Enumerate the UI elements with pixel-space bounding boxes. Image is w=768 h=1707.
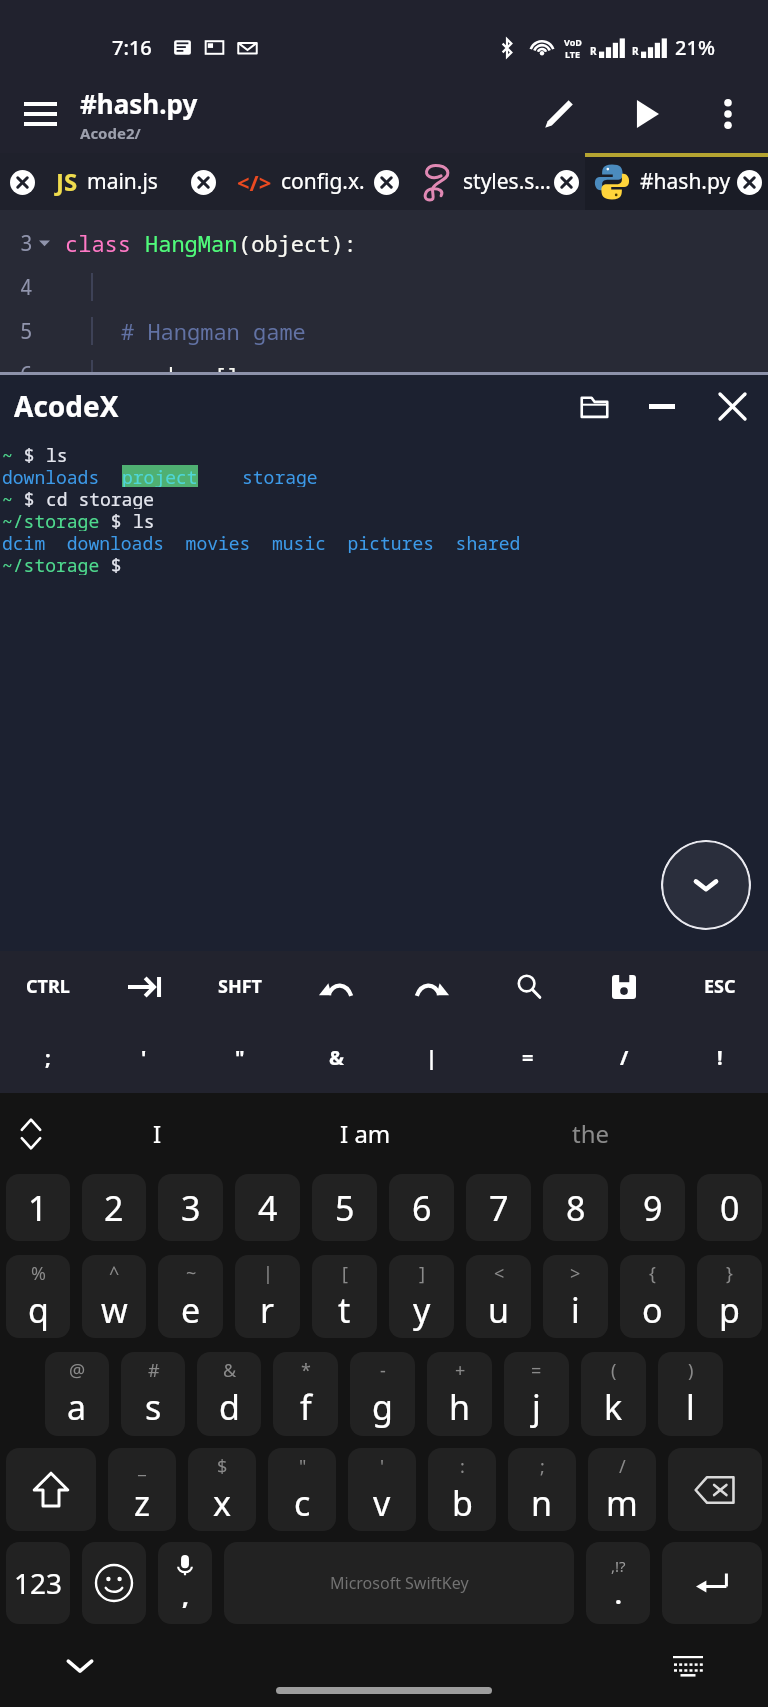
button[interactable]: #hash.py [585, 153, 768, 210]
button[interactable]: & [288, 1022, 384, 1093]
button[interactable]: 9 [620, 1174, 685, 1241]
button[interactable]: Edit [512, 75, 606, 153]
button[interactable]: " [268, 1448, 336, 1531]
button[interactable]: | [384, 1022, 480, 1093]
button[interactable]: the [478, 1093, 704, 1174]
button[interactable]: Close tab [736, 169, 762, 195]
button[interactable]: 4 [235, 1174, 300, 1241]
button[interactable]: Voice input [158, 1542, 212, 1624]
button[interactable]: ; [508, 1448, 576, 1531]
button[interactable]: Close tab [181, 153, 364, 210]
button[interactable]: SHFT [192, 951, 288, 1022]
button[interactable]: Redo [384, 951, 480, 1022]
button[interactable]: 6 [389, 1174, 454, 1241]
button[interactable]: Emoji [82, 1542, 146, 1624]
button[interactable]: Close terminal [697, 375, 768, 437]
staticText: ^ [109, 1261, 120, 1286]
button[interactable]: + [427, 1352, 492, 1436]
button[interactable]: } [697, 1255, 762, 1338]
button[interactable]: ] [389, 1255, 454, 1338]
button[interactable]: 0 [697, 1174, 762, 1241]
button[interactable]: I [62, 1093, 252, 1174]
button[interactable]: @ [45, 1352, 109, 1436]
button[interactable]: % [6, 1255, 70, 1338]
button[interactable]: Open folder [561, 375, 627, 437]
button[interactable]: = [504, 1352, 569, 1436]
staticText: ls [133, 509, 155, 531]
button[interactable]: < [466, 1255, 531, 1338]
button[interactable]: Hide keyboard [0, 1631, 160, 1701]
button[interactable]: Close tab [364, 153, 585, 210]
button[interactable]: Tab [96, 951, 192, 1022]
staticText: 2 [104, 1185, 124, 1231]
button[interactable]: [ [312, 1255, 377, 1338]
button[interactable]: ! [672, 1022, 768, 1093]
staticText: | [263, 1261, 273, 1286]
button[interactable]: { [620, 1255, 685, 1338]
button[interactable]: Close tab [373, 169, 399, 195]
button[interactable]: * [273, 1352, 338, 1436]
button[interactable]: Close tab [0, 153, 181, 210]
button[interactable]: Close tab [9, 169, 35, 195]
button[interactable]: Scroll to bottom [661, 840, 751, 930]
staticText: 6 [412, 1185, 432, 1231]
button[interactable]: Shift [6, 1448, 96, 1531]
button[interactable]: > [543, 1255, 608, 1338]
button[interactable]: Run [606, 75, 688, 153]
button[interactable]: = [480, 1022, 576, 1093]
button[interactable]: | [235, 1255, 300, 1338]
staticText: ,!? [611, 1556, 626, 1576]
staticText: % [31, 1261, 46, 1286]
staticText: . [615, 1578, 622, 1611]
button[interactable]: ) [658, 1352, 723, 1436]
staticText: ~/storage [2, 553, 100, 575]
button[interactable]: Close tab [553, 169, 579, 195]
staticText: ~ [2, 487, 13, 509]
button[interactable]: Enter [662, 1542, 762, 1624]
button[interactable]: ( [581, 1352, 646, 1436]
staticText: styles.s… [463, 167, 551, 196]
button[interactable]: 8 [543, 1174, 608, 1241]
staticText: < [494, 1261, 505, 1286]
button[interactable]: / [588, 1448, 656, 1531]
button[interactable]: 5 [312, 1174, 377, 1241]
button[interactable]: Expand suggestions [0, 1093, 62, 1174]
staticText: VoD [564, 36, 582, 48]
button[interactable]: CTRL [0, 951, 96, 1022]
button[interactable]: Search [480, 951, 576, 1022]
button[interactable]: Save [576, 951, 672, 1022]
button[interactable]: 1 [6, 1174, 70, 1241]
button[interactable]: Close tab [190, 169, 216, 195]
button[interactable]: ~ [158, 1255, 223, 1338]
button[interactable]: 7 [466, 1174, 531, 1241]
button[interactable]: ' [348, 1448, 416, 1531]
button[interactable]: ' [96, 1022, 192, 1093]
button[interactable]: I am [252, 1093, 478, 1174]
button[interactable]: # [121, 1352, 185, 1436]
button[interactable]: " [192, 1022, 288, 1093]
button[interactable]: ESC [672, 951, 768, 1022]
button[interactable]: 2 [82, 1174, 146, 1241]
button[interactable]: More options [688, 75, 768, 153]
button[interactable]: Microsoft SwiftKey [224, 1542, 574, 1624]
button[interactable]: Switch keyboard [608, 1631, 768, 1701]
button[interactable]: : [428, 1448, 496, 1531]
button[interactable]: / [576, 1022, 672, 1093]
button[interactable]: Minimize [627, 375, 697, 437]
button[interactable]: 3 [158, 1174, 223, 1241]
staticText: p [719, 1287, 740, 1333]
button[interactable]: Backspace [668, 1448, 762, 1531]
button[interactable]: ; [0, 1022, 96, 1093]
button[interactable]: $ [188, 1448, 256, 1531]
staticText: - [380, 1358, 386, 1383]
button[interactable]: 123 [6, 1542, 70, 1624]
button[interactable]: Undo [288, 951, 384, 1022]
button[interactable]: - [350, 1352, 415, 1436]
button[interactable]: ^ [82, 1255, 146, 1338]
button[interactable]: & [197, 1352, 261, 1436]
button[interactable]: _ [108, 1448, 176, 1531]
staticText: SHFT [218, 974, 262, 999]
button[interactable]: ,!? [586, 1542, 650, 1624]
staticText: ] [419, 1261, 425, 1286]
button[interactable]: Menu [0, 75, 80, 153]
